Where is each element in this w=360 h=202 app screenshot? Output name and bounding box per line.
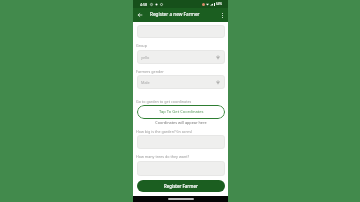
staticText: Go to garden to get coordinates bbox=[136, 99, 192, 104]
staticText: Register Farmer bbox=[164, 183, 198, 189]
staticText: 4:58 bbox=[140, 2, 148, 7]
button[interactable]: yello bbox=[137, 50, 225, 64]
button[interactable]: Tap To Get Coordinates bbox=[137, 105, 225, 119]
button[interactable] bbox=[137, 25, 225, 38]
staticText: Tap To Get Coordinates bbox=[159, 109, 204, 115]
button[interactable]: More options bbox=[218, 11, 227, 20]
button[interactable]: Male bbox=[137, 75, 225, 89]
staticText: Register a new Farmer bbox=[150, 11, 200, 17]
button[interactable]: Register Farmer bbox=[137, 180, 225, 192]
staticText: How big is the garden? (in acres) bbox=[136, 129, 193, 134]
staticText: yello bbox=[141, 55, 150, 60]
button[interactable]: Back bbox=[135, 10, 145, 20]
staticText: Farmers gender bbox=[136, 69, 164, 74]
staticText: Coordinates will appear here bbox=[137, 120, 225, 125]
staticText: Male bbox=[141, 80, 150, 85]
button[interactable] bbox=[137, 135, 225, 149]
staticText: 64% bbox=[216, 2, 222, 6]
staticText: How many trees do they want? bbox=[136, 154, 190, 159]
staticText: Group bbox=[136, 43, 147, 48]
